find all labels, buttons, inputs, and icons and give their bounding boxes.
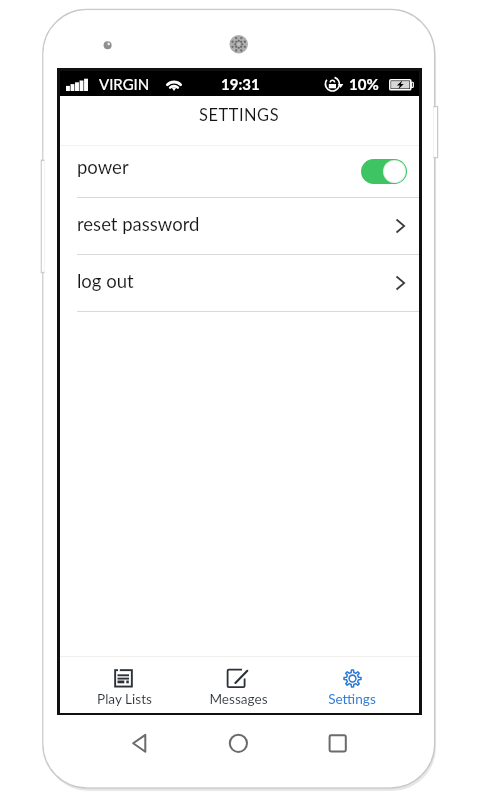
staticText: Settings [328, 691, 376, 707]
staticText: log out [77, 270, 134, 292]
staticText: SETTINGS [199, 105, 280, 125]
button[interactable]: Messages [181, 657, 295, 713]
staticText: Messages [209, 691, 268, 707]
staticText: VIRGIN [99, 75, 150, 93]
button[interactable]: power toggle [361, 159, 407, 184]
staticText: 10% [349, 75, 379, 93]
button[interactable]: log out [60, 255, 419, 311]
button[interactable]: Play Lists [67, 657, 181, 713]
button[interactable]: reset password [60, 198, 419, 254]
button[interactable]: power [60, 146, 419, 197]
staticText: power [77, 156, 129, 178]
staticText: reset password [77, 213, 200, 235]
staticText: Play Lists [97, 691, 152, 707]
staticText: 19:31 [221, 75, 260, 93]
button[interactable]: Settings [295, 657, 409, 713]
